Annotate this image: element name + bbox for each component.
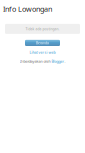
staticText: Info Lowongan: [3, 4, 52, 14]
button[interactable]: Beranda: [25, 40, 60, 46]
staticText: Beranda: [36, 40, 49, 45]
staticText: Lihat versi web: [29, 50, 55, 55]
button[interactable]: Blogger: [51, 59, 64, 64]
staticText: Diberdayakan oleh: [19, 59, 51, 64]
button[interactable]: Lihat versi web: [0, 50, 85, 55]
staticText: Blogger: [51, 59, 64, 64]
staticText: .: [64, 59, 65, 64]
staticText: Tidak ada postingan.: [25, 27, 59, 31]
